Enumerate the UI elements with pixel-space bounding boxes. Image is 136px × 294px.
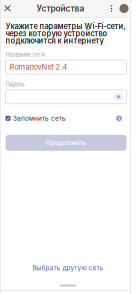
staticText: Запомнить сеть bbox=[13, 114, 66, 122]
staticText: Укажите параметры Wi-Fi-сети, через кото… bbox=[5, 23, 125, 44]
button[interactable]: More options bbox=[106, 0, 117, 17]
button[interactable]: Продолжить bbox=[5, 135, 126, 151]
button[interactable]: Выбрать другую сеть bbox=[3, 262, 133, 274]
staticText: i bbox=[118, 115, 119, 121]
button[interactable]: Help bbox=[114, 114, 123, 123]
staticText: Продолжить bbox=[45, 139, 86, 147]
staticText: Выбрать другую сеть bbox=[32, 264, 103, 272]
staticText: Название сети bbox=[5, 51, 44, 58]
button[interactable]: Close bbox=[0, 0, 15, 17]
button[interactable]: Show password bbox=[113, 92, 123, 102]
button[interactable]: Account bbox=[117, 0, 131, 17]
button[interactable]: Запомнить сеть bbox=[5, 114, 66, 122]
staticText: Устройства bbox=[36, 3, 84, 14]
staticText: Пароль bbox=[5, 81, 24, 88]
staticText: RomanovNet 2.4 bbox=[9, 62, 67, 71]
